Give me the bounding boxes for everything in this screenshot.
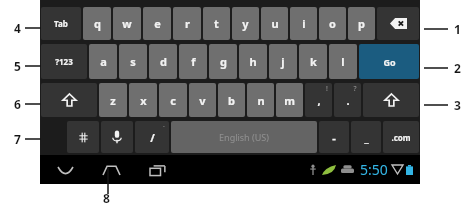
button[interactable]: i (290, 7, 317, 40)
staticText: x (140, 93, 147, 108)
staticText: j (281, 54, 285, 69)
button[interactable]: g (209, 44, 237, 79)
staticText: v (199, 93, 206, 108)
button[interactable]: w (113, 7, 141, 40)
staticText: q (94, 16, 101, 31)
button[interactable]: x (129, 83, 157, 117)
staticText: ? (353, 84, 357, 94)
staticText: p (358, 16, 365, 31)
staticText: b (228, 93, 235, 108)
staticText: d (160, 54, 167, 69)
button[interactable]: Switch language (67, 121, 99, 153)
staticText: 1 (454, 21, 461, 37)
staticText: 5 (14, 58, 21, 74)
button[interactable]: Backspace (377, 7, 419, 40)
staticText: u (271, 16, 279, 31)
button[interactable]: Recent apps (142, 159, 172, 181)
staticText: f (191, 54, 196, 69)
button[interactable]: p (348, 7, 375, 40)
staticText: e (154, 16, 161, 31)
button[interactable]: s (119, 44, 147, 79)
button[interactable]: Shift (363, 83, 419, 117)
button[interactable]: e (143, 7, 171, 40)
staticText: 6 (14, 96, 21, 112)
button[interactable]: c (159, 83, 187, 117)
button[interactable]: u (261, 7, 288, 40)
staticText: English (US) (219, 131, 269, 143)
button[interactable]: Back (50, 159, 80, 181)
staticText: o (329, 16, 336, 31)
button[interactable]: b (218, 83, 245, 117)
staticText: Go (383, 56, 396, 68)
button[interactable]: m (276, 83, 303, 117)
staticText: . (346, 93, 350, 108)
button[interactable]: j (269, 44, 297, 79)
staticText: 8 (103, 190, 110, 206)
staticText: i (302, 16, 306, 31)
staticText: z (110, 93, 116, 108)
staticText: t (214, 16, 219, 31)
staticText: y (242, 16, 249, 31)
staticText: 2 (454, 60, 461, 76)
staticText: 7 (14, 131, 21, 147)
staticText: , (317, 93, 321, 108)
staticText: s (130, 54, 136, 69)
button[interactable]: d (149, 44, 177, 79)
staticText: · (163, 122, 165, 132)
button[interactable]: - (319, 121, 349, 153)
button[interactable]: Tab (41, 7, 81, 40)
staticText: n (257, 93, 265, 108)
staticText: h (249, 54, 257, 69)
button[interactable]: v (189, 83, 216, 117)
button[interactable]: ? (334, 83, 361, 117)
staticText: - (332, 130, 336, 145)
staticText: a (100, 54, 107, 69)
button[interactable]: a (89, 44, 117, 79)
button[interactable]: · (135, 121, 169, 153)
staticText: 5:50 (360, 160, 388, 179)
button[interactable]: k (299, 44, 327, 79)
button[interactable]: .com (383, 121, 419, 153)
button[interactable]: ! (305, 83, 332, 117)
button[interactable]: Home (96, 159, 126, 181)
staticText: ! (326, 84, 328, 94)
button[interactable]: y (232, 7, 259, 40)
button[interactable]: English (US) (171, 121, 317, 153)
staticText: 3 (454, 97, 461, 113)
staticText: Tab (54, 18, 68, 29)
staticText: 4 (14, 20, 21, 36)
staticText: .com (391, 132, 411, 143)
button[interactable]: Voice input (101, 121, 133, 153)
button[interactable]: n (247, 83, 274, 117)
button[interactable]: f (179, 44, 207, 79)
button[interactable]: Shift (41, 83, 97, 117)
staticText: w (122, 16, 132, 31)
staticText: c (170, 93, 176, 108)
staticText: r (185, 16, 190, 31)
button[interactable]: Go (359, 44, 419, 79)
button[interactable]: o (319, 7, 346, 40)
staticText: m (284, 93, 295, 108)
staticText: / (150, 130, 155, 145)
button[interactable]: ?123 (41, 44, 87, 79)
staticText: _ (364, 130, 369, 145)
button[interactable]: r (173, 7, 201, 40)
button[interactable]: h (239, 44, 267, 79)
button[interactable]: _ (351, 121, 381, 153)
staticText: k (310, 54, 317, 69)
staticText: ?123 (55, 56, 73, 67)
staticText: l (341, 54, 345, 69)
button[interactable]: q (83, 7, 111, 40)
button[interactable]: t (203, 7, 230, 40)
button[interactable]: l (329, 44, 357, 79)
button[interactable]: z (99, 83, 127, 117)
staticText: g (220, 54, 227, 69)
